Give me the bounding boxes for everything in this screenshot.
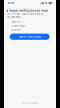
button[interactable]: Back xyxy=(4,8,9,13)
staticText: Repor definições xyxy=(19,35,41,38)
staticText: Dados móveis xyxy=(11,25,25,27)
staticText: Redes Wi‑Fi xyxy=(11,21,23,23)
staticText: Bluetooth xyxy=(11,29,20,31)
button[interactable]: Repor definições xyxy=(10,34,50,40)
staticText: Repor definições de rede xyxy=(9,9,48,12)
staticText: Isto irá repor todas as definições de re… xyxy=(6,13,43,18)
staticText: 9:41 xyxy=(8,1,14,5)
